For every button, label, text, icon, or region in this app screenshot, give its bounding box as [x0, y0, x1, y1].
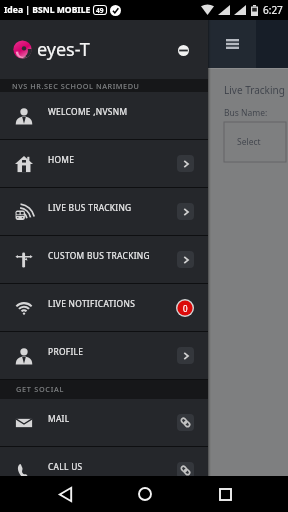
staticText: NVS HR.SEC SCHOOL NARIMEDU	[12, 81, 140, 91]
button[interactable]: Open CUSTOM BUS TRACKING	[177, 251, 194, 268]
button[interactable]: CUSTOM BUS TRACKING	[0, 236, 208, 283]
staticText: PROFILE	[48, 346, 84, 357]
staticText: HOME	[48, 154, 75, 165]
button[interactable]: HOME	[0, 140, 208, 187]
button[interactable]: PROFILE	[0, 332, 208, 379]
button[interactable]: Close drawer	[172, 39, 194, 61]
button[interactable]: Open link for MAIL	[177, 414, 194, 431]
button[interactable]: Recent apps	[212, 481, 238, 507]
staticText: MAIL	[48, 413, 70, 424]
staticText: 0	[183, 303, 188, 314]
staticText: LIVE NOTIFICATIONS	[48, 298, 136, 309]
button[interactable]: Open navigation menu	[220, 32, 244, 56]
staticText: CALL US	[48, 461, 83, 472]
staticText: eyes-T	[37, 37, 90, 62]
button[interactable]: MAIL	[0, 399, 208, 446]
button[interactable]: CALL US	[0, 447, 208, 494]
button[interactable]: Select	[224, 122, 286, 162]
button[interactable]: WELCOME ,NVSNM	[0, 92, 208, 139]
staticText: WELCOME ,NVSNM	[48, 106, 128, 117]
staticText: Select	[237, 136, 261, 148]
button[interactable]: Back	[52, 481, 78, 507]
button[interactable]: Open link for CALL US	[177, 462, 194, 479]
button[interactable]: LIVE BUS TRACKING	[0, 188, 208, 235]
button[interactable]: LIVE NOTIFICATIONS	[0, 284, 208, 331]
staticText: 49	[96, 6, 104, 15]
staticText: CUSTOM BUS TRACKING	[48, 250, 150, 261]
staticText: Bus Name:	[224, 107, 268, 119]
staticText: Idea | BSNL MOBILE	[4, 4, 91, 16]
staticText: GET SOCIAL	[16, 384, 64, 394]
staticText: Live Tracking	[224, 83, 285, 97]
button[interactable]: Open LIVE BUS TRACKING	[177, 203, 194, 220]
staticText: 6:27	[263, 3, 283, 17]
button[interactable]: Open HOME	[177, 155, 194, 172]
staticText: LIVE BUS TRACKING	[48, 202, 132, 213]
button[interactable]: Open PROFILE	[177, 347, 194, 364]
button[interactable]: Home	[132, 481, 158, 507]
